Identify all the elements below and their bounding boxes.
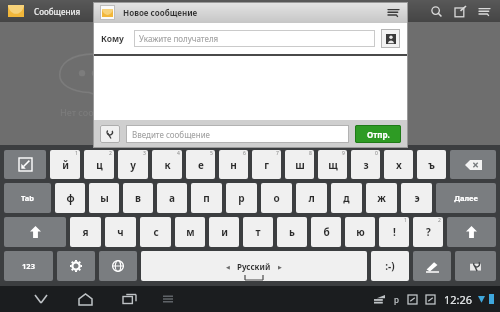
staticText: с: [153, 225, 159, 239]
button[interactable]: Menu: [472, 0, 496, 22]
button[interactable]: м: [175, 217, 205, 247]
staticText: я: [82, 225, 89, 239]
button[interactable]: back: [450, 150, 496, 179]
button[interactable]: shift: [4, 217, 66, 247]
button[interactable]: б: [311, 217, 341, 247]
button[interactable]: Recents: [114, 286, 144, 312]
button[interactable]: !: [379, 217, 409, 247]
button[interactable]: Compose: [448, 0, 472, 22]
staticText: :-): [385, 259, 395, 273]
button[interactable]: н: [219, 150, 248, 179]
button[interactable]: ш: [285, 150, 314, 179]
staticText: е: [198, 158, 204, 172]
staticText: 5: [210, 150, 213, 157]
button[interactable]: д: [331, 183, 362, 213]
staticText: л: [308, 191, 315, 205]
button[interactable]: Home: [70, 286, 100, 312]
staticText: Новое сообщение: [123, 7, 198, 18]
button[interactable]: п: [191, 183, 222, 213]
button[interactable]: ж: [366, 183, 397, 213]
staticText: 2: [438, 217, 441, 224]
button[interactable]: у: [118, 150, 148, 179]
staticText: щ: [328, 158, 338, 172]
button[interactable]: а: [157, 183, 187, 213]
staticText: 6: [243, 150, 246, 157]
staticText: о: [273, 191, 280, 205]
staticText: 3: [143, 150, 146, 157]
button[interactable]: я: [70, 217, 101, 247]
staticText: Введите сообщение: [132, 129, 211, 140]
button[interactable]: Укажите получателя: [134, 30, 375, 47]
staticText: 1: [404, 217, 407, 224]
staticText: ю: [356, 225, 365, 239]
staticText: ъ: [428, 158, 435, 172]
staticText: 9: [342, 150, 345, 157]
button[interactable]: ю: [345, 217, 375, 247]
button[interactable]: и: [209, 217, 239, 247]
button[interactable]: х: [384, 150, 413, 179]
button[interactable]: й: [50, 150, 80, 179]
staticText: 8: [309, 150, 312, 157]
button[interactable]: Далее: [436, 183, 496, 213]
staticText: г: [264, 158, 269, 172]
button[interactable]: ъ: [417, 150, 446, 179]
staticText: т: [255, 225, 261, 239]
staticText: ▶: [278, 264, 282, 270]
button[interactable]: Search: [424, 0, 448, 22]
staticText: Далее: [454, 193, 478, 203]
button[interactable]: [93, 56, 408, 120]
staticText: Русский: [237, 261, 271, 272]
staticText: ы: [100, 191, 109, 205]
button[interactable]: ы: [89, 183, 119, 213]
button[interactable]: в: [123, 183, 153, 213]
button[interactable]: Tab: [4, 183, 51, 213]
staticText: м: [186, 225, 195, 239]
button[interactable]: ◀: [141, 251, 367, 281]
button[interactable]: pen: [413, 251, 451, 281]
staticText: н: [230, 158, 237, 172]
button[interactable]: з: [351, 150, 380, 179]
staticText: в: [135, 191, 141, 205]
button[interactable]: :-): [371, 251, 409, 281]
staticText: п: [203, 191, 210, 205]
button[interactable]: ь: [277, 217, 307, 247]
button[interactable]: э: [401, 183, 432, 213]
button[interactable]: ф: [55, 183, 85, 213]
staticText: 2: [109, 150, 112, 157]
button[interactable]: globe: [99, 251, 137, 281]
staticText: ж: [377, 191, 386, 205]
staticText: 12:26: [444, 292, 473, 307]
button[interactable]: Введите сообщение: [126, 125, 349, 143]
button[interactable]: е: [186, 150, 215, 179]
button[interactable]: г: [252, 150, 281, 179]
button[interactable]: к: [152, 150, 182, 179]
button[interactable]: ?: [413, 217, 443, 247]
staticText: х: [396, 158, 402, 172]
button[interactable]: ц: [84, 150, 114, 179]
button[interactable]: р: [226, 183, 257, 213]
staticText: б: [323, 225, 330, 239]
staticText: Укажите получателя: [139, 33, 219, 44]
button[interactable]: Menu: [156, 287, 180, 311]
button[interactable]: ч: [105, 217, 136, 247]
button[interactable]: collapse: [4, 150, 46, 179]
staticText: а: [169, 191, 175, 205]
staticText: ц: [96, 158, 103, 172]
button[interactable]: Back: [26, 286, 56, 312]
button[interactable]: 123: [4, 251, 53, 281]
button[interactable]: с: [140, 217, 171, 247]
button[interactable]: gear: [57, 251, 95, 281]
button[interactable]: Contacts: [381, 29, 400, 48]
button[interactable]: т: [243, 217, 273, 247]
button[interactable]: л: [296, 183, 327, 213]
button[interactable]: clip: [455, 251, 496, 281]
button[interactable]: Отпр.: [355, 125, 401, 143]
button[interactable]: shift: [447, 217, 496, 247]
button[interactable]: щ: [318, 150, 347, 179]
button[interactable]: Attach: [100, 125, 120, 143]
staticText: !: [393, 225, 396, 239]
button[interactable]: More options: [382, 2, 404, 23]
staticText: к: [164, 158, 171, 172]
staticText: 1: [75, 150, 78, 157]
button[interactable]: о: [261, 183, 292, 213]
